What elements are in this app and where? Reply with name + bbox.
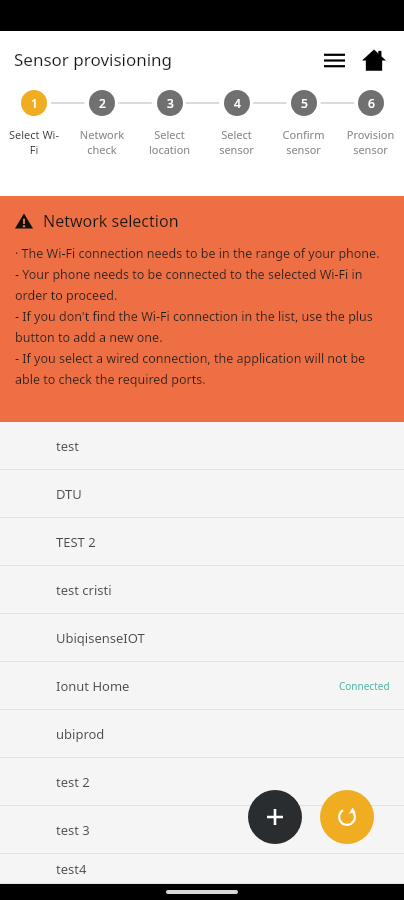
- button[interactable]: 5: [270, 90, 337, 157]
- staticText: 5: [301, 95, 308, 111]
- staticText: 3: [167, 95, 174, 111]
- button[interactable]: Refresh: [320, 790, 374, 844]
- staticText: UbiqisenseIOT: [56, 629, 145, 647]
- button[interactable]: Ionut Home: [0, 662, 404, 710]
- button[interactable]: Add network: [248, 790, 302, 844]
- staticText: test cristi: [56, 581, 112, 599]
- button[interactable]: test 3: [0, 806, 404, 854]
- staticText: Select Wi- Fi: [0, 127, 68, 157]
- button[interactable]: test4: [0, 854, 404, 884]
- staticText: test 2: [56, 773, 90, 791]
- staticText: Confirm sensor: [270, 127, 337, 157]
- staticText: 2: [99, 95, 106, 111]
- staticText: ubiprod: [56, 725, 105, 743]
- staticText: Connected: [339, 679, 390, 693]
- button[interactable]: test cristi: [0, 566, 404, 614]
- button[interactable]: Menu: [314, 40, 354, 80]
- staticText: test: [56, 437, 79, 455]
- button[interactable]: ubiprod: [0, 710, 404, 758]
- button[interactable]: UbiqisenseIOT: [0, 614, 404, 662]
- staticText: Provision sensor: [337, 127, 404, 157]
- staticText: Select sensor: [203, 127, 270, 157]
- staticText: TEST 2: [56, 533, 96, 551]
- button[interactable]: Home: [354, 40, 394, 80]
- staticText: Ionut Home: [56, 677, 130, 695]
- staticText: test4: [56, 860, 87, 878]
- button[interactable]: test 2: [0, 758, 404, 806]
- button[interactable]: DTU: [0, 470, 404, 518]
- staticText: test 3: [56, 821, 90, 839]
- button[interactable]: 1: [0, 90, 68, 157]
- button[interactable]: test: [0, 422, 404, 470]
- staticText: · The Wi-Fi connection needs to be in th…: [15, 245, 389, 388]
- staticText: Network check: [68, 127, 136, 157]
- staticText: 1: [31, 95, 38, 111]
- staticText: 6: [368, 95, 375, 111]
- button[interactable]: 3: [136, 90, 203, 157]
- staticText: Sensor provisioning: [14, 48, 173, 71]
- staticText: DTU: [56, 485, 82, 503]
- button[interactable]: 4: [203, 90, 270, 157]
- staticText: 4: [234, 95, 241, 111]
- button[interactable]: 2: [68, 90, 136, 157]
- staticText: Network selection: [43, 210, 179, 232]
- button[interactable]: TEST 2: [0, 518, 404, 566]
- staticText: Select location: [136, 127, 203, 157]
- button[interactable]: 6: [337, 90, 404, 157]
